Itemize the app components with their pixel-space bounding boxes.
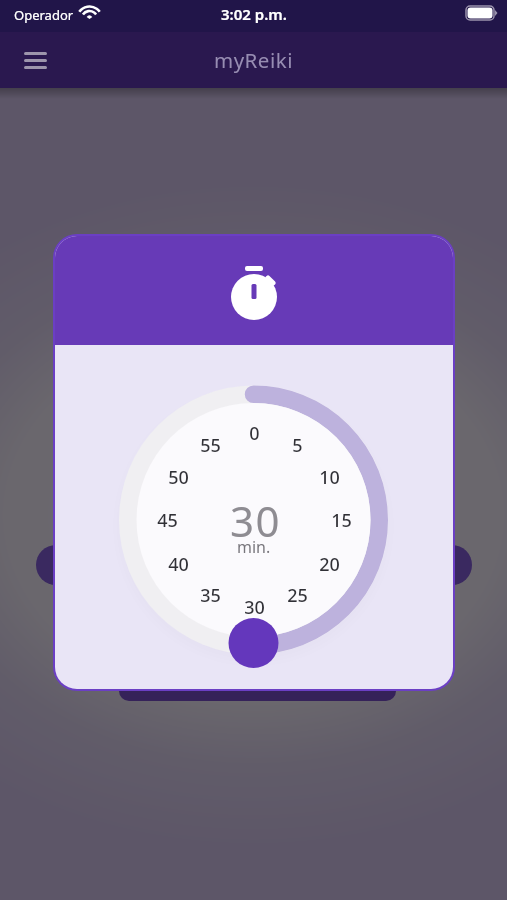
staticText: 55 [200, 433, 221, 457]
staticText: 0 [249, 421, 260, 445]
staticText: 3:02 p.m. [221, 4, 287, 24]
staticText: min. [237, 536, 271, 558]
button[interactable] [229, 618, 279, 668]
button[interactable] [36, 545, 76, 585]
staticText: 35 [200, 583, 221, 607]
staticText: 45 [157, 508, 178, 532]
staticText: 15 [331, 508, 352, 532]
button[interactable] [15, 42, 55, 78]
staticText: myReiki [214, 46, 293, 74]
staticText: 30 [244, 595, 265, 619]
staticText: 20 [319, 552, 340, 576]
staticText: 10 [319, 465, 340, 489]
staticText: 40 [168, 552, 189, 576]
staticText: 30 [230, 492, 282, 540]
staticText: 25 [287, 583, 308, 607]
button[interactable] [119, 386, 388, 655]
staticText: 50 [168, 465, 189, 489]
button[interactable] [432, 545, 472, 585]
staticText: Operador [14, 6, 74, 24]
staticText: 5 [292, 433, 303, 457]
